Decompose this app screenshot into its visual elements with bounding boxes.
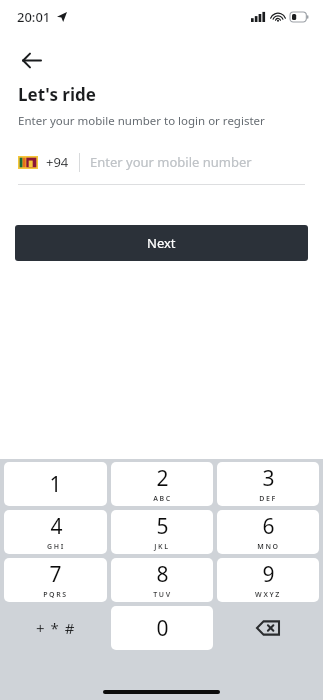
button[interactable]: 4 bbox=[4, 510, 107, 554]
button[interactable]: 7 bbox=[4, 558, 107, 602]
button[interactable]: Enter your mobile number bbox=[90, 149, 305, 175]
staticText: 1 bbox=[49, 470, 62, 499]
staticText: ABC bbox=[153, 494, 172, 504]
staticText: DEF bbox=[259, 494, 277, 504]
staticText: Enter your mobile number to login or reg… bbox=[18, 113, 265, 129]
button[interactable]: 3 bbox=[217, 462, 319, 506]
staticText: 2 bbox=[156, 464, 169, 493]
button[interactable]: 9 bbox=[217, 558, 319, 602]
button[interactable]: 0 bbox=[111, 606, 213, 650]
button[interactable]: 2 bbox=[111, 462, 213, 506]
staticText: JKL bbox=[154, 542, 170, 552]
staticText: WXYZ bbox=[255, 590, 281, 600]
button[interactable]: 5 bbox=[111, 510, 213, 554]
staticText: + * # bbox=[36, 618, 76, 638]
staticText: 3 bbox=[262, 464, 275, 493]
staticText: MNO bbox=[257, 542, 280, 552]
button[interactable]: Back bbox=[11, 40, 51, 80]
staticText: +94 bbox=[46, 153, 69, 171]
staticText: PQRS bbox=[43, 590, 68, 600]
staticText: 8 bbox=[156, 560, 169, 589]
staticText: GHI bbox=[47, 542, 65, 552]
staticText: Enter your mobile number bbox=[90, 153, 252, 171]
button[interactable]: 1 bbox=[4, 462, 107, 506]
button[interactable]: Next bbox=[15, 225, 308, 261]
staticText: 6 bbox=[262, 512, 275, 541]
staticText: TUV bbox=[153, 590, 172, 600]
staticText: 20:01 bbox=[17, 8, 51, 26]
button[interactable]: + * # bbox=[4, 606, 107, 650]
staticText: 7 bbox=[49, 560, 62, 589]
button[interactable]: +94 bbox=[18, 153, 69, 171]
staticText: 5 bbox=[156, 512, 169, 541]
staticText: Let's ride bbox=[18, 83, 96, 106]
button[interactable]: 8 bbox=[111, 558, 213, 602]
staticText: 4 bbox=[50, 512, 63, 541]
staticText: 0 bbox=[156, 614, 169, 643]
staticText: 9 bbox=[262, 560, 275, 589]
button[interactable]: 6 bbox=[217, 510, 319, 554]
button[interactable]: Backspace bbox=[217, 606, 319, 650]
staticText: Next bbox=[147, 234, 176, 252]
